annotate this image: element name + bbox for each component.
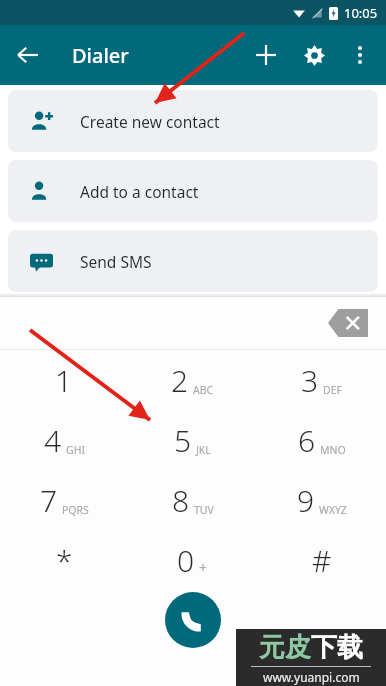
staticText: Add to a contact bbox=[80, 181, 199, 202]
button[interactable]: 4 bbox=[0, 410, 128, 470]
button[interactable]: 2 bbox=[128, 350, 257, 410]
staticText: 7 bbox=[40, 480, 58, 521]
staticText: 6 bbox=[298, 420, 316, 461]
staticText: 1 bbox=[55, 360, 73, 401]
button[interactable]: Backspace bbox=[326, 306, 370, 340]
button[interactable]: Back bbox=[0, 27, 56, 83]
staticText: 3 bbox=[301, 360, 319, 401]
button[interactable]: 3 bbox=[257, 350, 386, 410]
button[interactable]: 1 bbox=[0, 350, 128, 410]
button[interactable]: 0 bbox=[128, 530, 257, 590]
staticText: 2 bbox=[171, 360, 189, 401]
button[interactable]: 5 bbox=[128, 410, 257, 470]
staticText: WXYZ bbox=[319, 503, 347, 517]
button[interactable]: Add to a contact bbox=[8, 160, 378, 222]
button[interactable]: More options bbox=[338, 33, 382, 77]
staticText: # bbox=[312, 540, 332, 581]
staticText: JKL bbox=[196, 443, 211, 457]
button[interactable]: 8 bbox=[128, 470, 257, 530]
button[interactable]: Send SMS bbox=[8, 230, 378, 292]
button[interactable]: 6 bbox=[257, 410, 386, 470]
staticText: 0 bbox=[177, 540, 195, 581]
staticText: Send SMS bbox=[80, 251, 152, 272]
staticText: ABC bbox=[193, 383, 214, 397]
staticText: 8 bbox=[172, 480, 190, 521]
button[interactable]: Create new contact bbox=[8, 90, 378, 152]
button[interactable]: Add bbox=[242, 31, 290, 79]
staticText: 10:05 bbox=[344, 4, 378, 22]
staticText: TUV bbox=[194, 503, 214, 517]
staticText: GHI bbox=[66, 443, 85, 457]
button[interactable]: 7 bbox=[0, 470, 128, 530]
staticText: 4 bbox=[44, 420, 62, 461]
staticText: 9 bbox=[297, 480, 315, 521]
staticText: DEF bbox=[323, 383, 342, 397]
button[interactable]: Call bbox=[165, 592, 221, 648]
staticText: Create new contact bbox=[80, 111, 220, 132]
staticText: 元皮 bbox=[259, 631, 311, 664]
staticText: MNO bbox=[320, 443, 346, 457]
button[interactable]: # bbox=[257, 530, 386, 590]
staticText: Dialer bbox=[72, 42, 129, 69]
staticText: www.yuanpi.com bbox=[263, 669, 360, 685]
button[interactable]: * bbox=[0, 530, 128, 590]
button[interactable]: Settings bbox=[290, 31, 338, 79]
staticText: 5 bbox=[174, 420, 192, 461]
button[interactable]: 9 bbox=[257, 470, 386, 530]
staticText: PQRS bbox=[62, 503, 89, 517]
staticText: 下载 bbox=[311, 631, 363, 664]
staticText: + bbox=[199, 558, 208, 577]
staticText: * bbox=[56, 540, 73, 581]
